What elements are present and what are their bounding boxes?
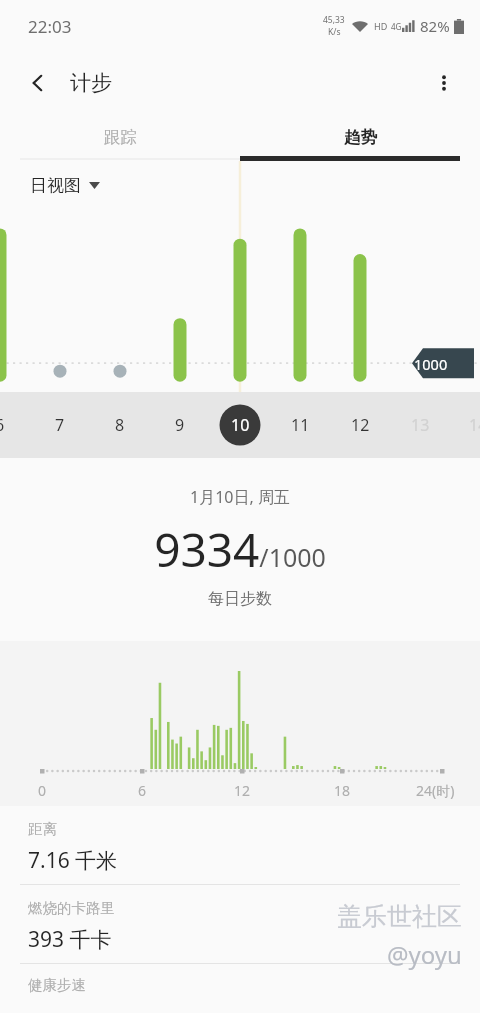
button[interactable]: 0 [0, 641, 480, 806]
button[interactable]: Back [16, 61, 60, 105]
staticText: 393 千卡 [28, 925, 112, 954]
button[interactable]: 9 [158, 392, 202, 458]
staticText: 趋势 [344, 127, 377, 148]
button[interactable]: 6 [0, 392, 22, 458]
button[interactable]: 健康步速 [0, 964, 480, 1008]
staticText: 0 [38, 781, 47, 800]
staticText: 1月10日, 周五 [190, 486, 290, 508]
staticText: HD [374, 20, 388, 32]
button[interactable]: 10 [218, 392, 262, 458]
staticText: K/s [328, 26, 341, 38]
button[interactable]: 8 [98, 392, 142, 458]
staticText: 7.16 千米 [28, 846, 118, 875]
staticText: 7 [55, 414, 65, 436]
staticText: 13 [411, 414, 430, 436]
staticText: 22:03 [28, 15, 72, 38]
staticText: 9334/1000 [154, 518, 326, 581]
staticText: 82% [420, 16, 450, 36]
staticText: 盖乐世社区 [337, 901, 462, 932]
button[interactable]: 跟踪 [0, 114, 240, 161]
staticText: 9 [175, 414, 185, 436]
button[interactable]: More options [422, 61, 466, 105]
staticText: 45,33 [323, 14, 345, 26]
staticText: 燃烧的卡路里 [28, 899, 115, 917]
button[interactable]: 12 [338, 392, 382, 458]
staticText: 12 [351, 414, 370, 436]
button[interactable]: 趋势 [240, 114, 480, 161]
staticText: 10 [231, 414, 250, 436]
staticText: 14 [469, 414, 480, 436]
staticText: 6 [0, 414, 5, 436]
staticText: 4G [391, 21, 402, 32]
button[interactable]: 燃烧的卡路里 [0, 885, 480, 963]
staticText: 日视图 [30, 175, 81, 196]
staticText: 6 [138, 781, 147, 800]
staticText: 每日步数 [208, 589, 272, 609]
staticText: 计步 [70, 70, 112, 96]
staticText: 12 [234, 781, 251, 800]
staticText: 跟踪 [104, 127, 137, 148]
staticText: 健康步速 [28, 976, 86, 994]
button[interactable]: 7 [38, 392, 82, 458]
button[interactable]: 日视图 [30, 175, 100, 196]
staticText: 8 [115, 414, 125, 436]
staticText: 距离 [28, 820, 57, 838]
button[interactable]: 日视图 [0, 161, 480, 392]
button[interactable]: 距离 [0, 806, 480, 884]
staticText: 18 [334, 781, 351, 800]
staticText: 24(时) [416, 781, 455, 800]
staticText: 1000 [414, 354, 448, 374]
staticText: @yoyu [387, 938, 462, 971]
button[interactable]: 11 [278, 392, 322, 458]
staticText: 11 [291, 414, 310, 436]
